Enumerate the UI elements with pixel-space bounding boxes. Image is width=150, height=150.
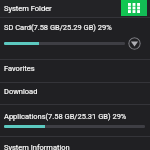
- button[interactable]: Apps: [121, 0, 147, 16]
- staticText: System Information: [4, 143, 70, 150]
- staticText: Applications(7.58 GB/25.31 GB) 29%: [4, 112, 127, 121]
- button[interactable]: SD Card(7.58 GB/25.29 GB) 29%: [0, 18, 150, 59]
- button[interactable]: Applications(7.58 GB/25.31 GB) 29%: [0, 105, 150, 136]
- staticText: SD Card(7.58 GB/25.29 GB) 29%: [4, 23, 112, 32]
- button[interactable]: System Folder: [4, 4, 52, 13]
- staticText: Download: [4, 87, 38, 96]
- button[interactable]: Expand: [128, 37, 141, 50]
- staticText: System Folder: [4, 4, 52, 13]
- button[interactable]: System Information: [0, 137, 150, 150]
- button[interactable]: Favorites: [0, 60, 150, 82]
- staticText: Favorites: [4, 64, 35, 73]
- button[interactable]: Download: [0, 83, 150, 104]
